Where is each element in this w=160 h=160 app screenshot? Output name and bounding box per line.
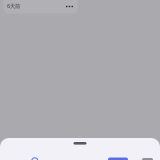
button[interactable]: More [62, 0, 76, 12]
button[interactable]: Search [25, 154, 47, 160]
staticText: 6天前 [7, 2, 20, 10]
button[interactable]: Pen [104, 157, 132, 160]
button[interactable]: 6天前 [7, 0, 27, 11]
button[interactable]: Highlighter [137, 158, 157, 160]
